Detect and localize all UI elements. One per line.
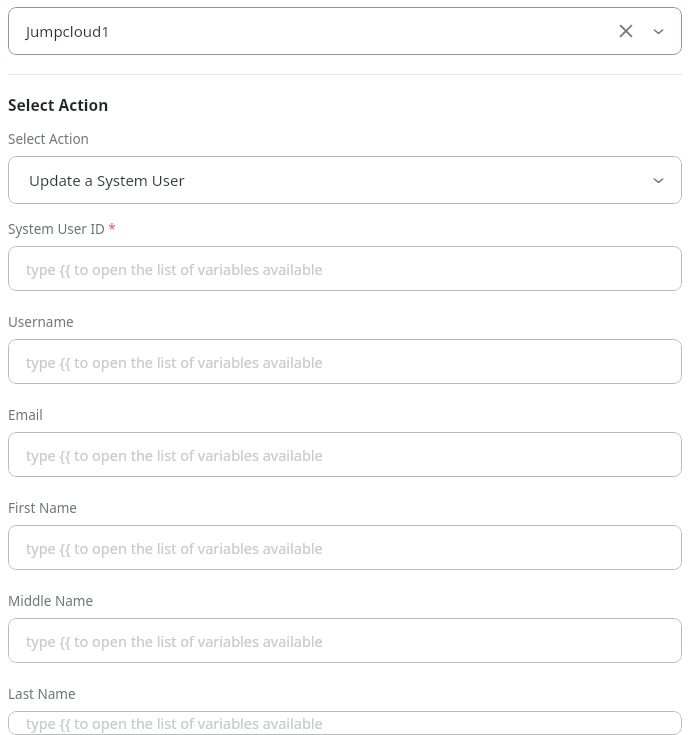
staticText: type {{ to open the list of variables av… xyxy=(26,445,323,465)
staticText: type {{ to open the list of variables av… xyxy=(26,538,323,558)
other: Open action list xyxy=(648,170,668,190)
button[interactable]: Update a System User xyxy=(8,156,682,204)
staticText: Select Action xyxy=(8,94,109,115)
staticText: Select Action xyxy=(8,130,89,148)
staticText: type {{ to open the list of variables av… xyxy=(26,352,323,372)
button[interactable]: type {{ to open the list of variables av… xyxy=(8,432,682,477)
staticText: type {{ to open the list of variables av… xyxy=(26,259,323,279)
staticText: First Name xyxy=(8,499,77,517)
staticText: Jumpcloud1 xyxy=(26,21,110,41)
button[interactable]: type {{ to open the list of variables av… xyxy=(8,339,682,384)
staticText: type {{ to open the list of variables av… xyxy=(26,631,323,651)
staticText: Middle Name xyxy=(8,592,94,610)
staticText: Email xyxy=(8,406,43,424)
staticText: type {{ to open the list of variables av… xyxy=(26,713,323,733)
button[interactable]: type {{ to open the list of variables av… xyxy=(8,711,682,735)
staticText: Username xyxy=(8,313,74,331)
button[interactable]: type {{ to open the list of variables av… xyxy=(8,525,682,570)
staticText: System User ID * xyxy=(8,220,116,238)
button[interactable]: Clear selection xyxy=(616,21,636,41)
button[interactable]: Open dropdown xyxy=(648,21,668,41)
staticText: Last Name xyxy=(8,685,76,703)
button[interactable]: type {{ to open the list of variables av… xyxy=(8,246,682,291)
button[interactable]: Jumpcloud1 xyxy=(8,7,682,55)
button[interactable]: type {{ to open the list of variables av… xyxy=(8,618,682,663)
staticText: Update a System User xyxy=(29,170,185,190)
